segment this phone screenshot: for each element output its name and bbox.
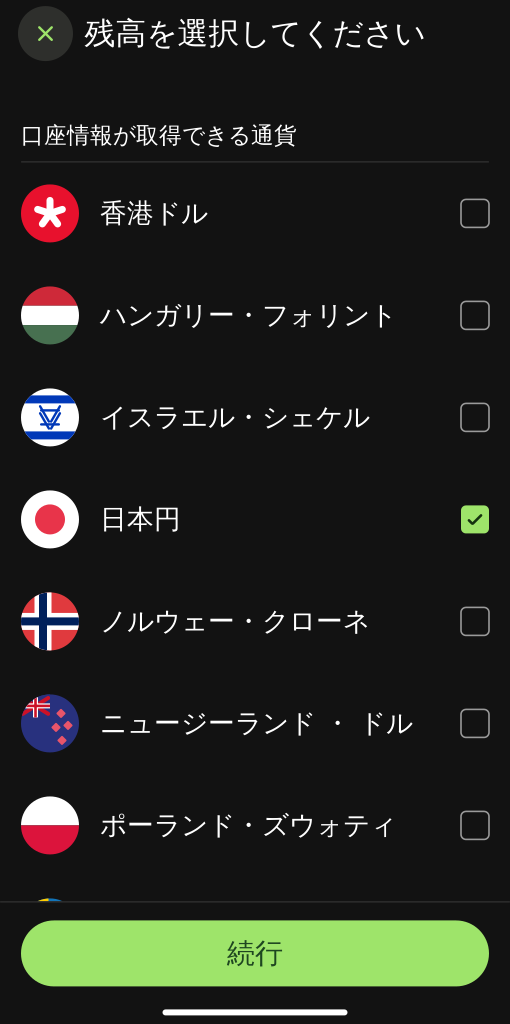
button[interactable]: 香港ドル [0, 162, 510, 264]
button[interactable]: 日本円 [0, 468, 510, 570]
staticText: ハンガリー・フォリント [100, 299, 397, 332]
staticText: ニュージーランド ・ ドル [100, 707, 413, 740]
button[interactable]: ポーランド・ズウォティ [0, 774, 510, 876]
button[interactable]: ハンガリー・フォリント [0, 264, 510, 366]
staticText: ノルウェー・クローネ [100, 605, 370, 638]
button[interactable]: ノルウェー・クローネ [0, 570, 510, 672]
button[interactable]: ニュージーランド ・ ドル [0, 672, 510, 774]
staticText: 口座情報が取得できる通貨 [21, 122, 297, 149]
button[interactable]: イスラエル・シェケル [0, 366, 510, 468]
staticText: 残高を選択してください [84, 15, 425, 52]
button[interactable]: 閉じる [18, 6, 73, 61]
staticText: 続行 [227, 936, 283, 971]
staticText: イスラエル・シェケル [100, 401, 370, 434]
staticText: ポーランド・ズウォティ [100, 809, 397, 842]
button[interactable]: 続行 [0, 920, 510, 986]
staticText: スウェーデン・クローネ [100, 911, 397, 944]
staticText: 日本円 [100, 503, 181, 536]
button[interactable]: スウェーデン・クローネ [0, 876, 510, 978]
staticText: 香港ドル [100, 197, 208, 230]
